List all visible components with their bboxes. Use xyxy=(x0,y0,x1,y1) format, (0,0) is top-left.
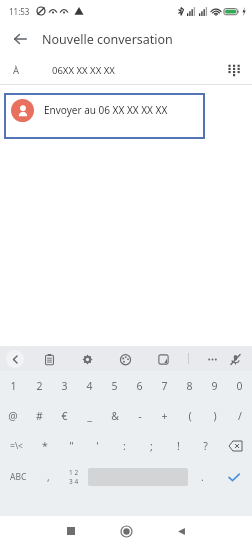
button[interactable]: 5 xyxy=(102,371,127,401)
button[interactable]: 9 xyxy=(202,371,227,401)
staticText: 8 xyxy=(186,379,193,393)
staticText: 0 xyxy=(236,379,243,393)
button[interactable]: 1 xyxy=(0,371,26,401)
button[interactable]: Backspace xyxy=(219,431,252,461)
button[interactable]: * xyxy=(32,431,58,461)
button[interactable]: Home xyxy=(113,518,139,544)
button[interactable]: ? xyxy=(192,431,219,461)
button[interactable]: ( xyxy=(177,401,202,431)
staticText: - xyxy=(138,409,142,423)
button[interactable]: 3 xyxy=(52,371,77,401)
staticText: 3 xyxy=(61,379,68,393)
staticText: 2 xyxy=(36,379,43,393)
staticText: " xyxy=(69,439,74,453)
button[interactable]: ) xyxy=(202,401,227,431)
button[interactable]: " xyxy=(58,431,84,461)
button[interactable]: ' xyxy=(84,431,111,461)
staticText: / xyxy=(238,409,242,423)
staticText: ' xyxy=(96,439,99,453)
button[interactable]: 6 xyxy=(127,371,152,401)
button[interactable]: + xyxy=(152,401,177,431)
button[interactable]: 0 xyxy=(227,371,252,401)
staticText: 1 2 xyxy=(69,468,79,477)
button[interactable]: : xyxy=(111,431,138,461)
button[interactable]: ABC xyxy=(0,461,36,493)
button[interactable]: Enter xyxy=(215,461,252,493)
button[interactable]: =\< xyxy=(0,431,32,461)
button[interactable]: Envoyer au 06 XX XX XX XX xyxy=(4,93,205,139)
staticText: € xyxy=(61,409,68,423)
button[interactable]: Back xyxy=(168,518,194,544)
button[interactable]: Expand toolbar xyxy=(6,350,24,368)
button[interactable]: Numbers xyxy=(61,461,86,493)
button[interactable]: 8 xyxy=(177,371,202,401)
staticText: Nouvelle conversation xyxy=(42,31,173,48)
staticText: 1 xyxy=(10,379,17,393)
staticText: Envoyer au 06 XX XX XX XX xyxy=(44,103,168,117)
staticText: + xyxy=(161,409,168,423)
staticText: # xyxy=(36,409,43,423)
button[interactable]: ; xyxy=(138,431,165,461)
button[interactable]: 7 xyxy=(152,371,177,401)
staticText: ) xyxy=(213,409,217,423)
staticText: 7 xyxy=(161,379,168,393)
staticText: ABC xyxy=(10,471,27,483)
staticText: 6 xyxy=(136,379,143,393)
button[interactable]: # xyxy=(26,401,52,431)
staticText: * xyxy=(42,439,48,453)
staticText: 11:53 xyxy=(9,6,30,17)
staticText: . xyxy=(201,470,204,484)
staticText: ; xyxy=(150,439,153,453)
staticText: ( xyxy=(188,409,192,423)
button[interactable]: . xyxy=(190,461,215,493)
button[interactable]: @ xyxy=(0,401,26,431)
button[interactable]: & xyxy=(102,401,127,431)
staticText: 06XX XX XX XX xyxy=(52,64,115,77)
staticText: _ xyxy=(87,409,92,423)
button[interactable]: 2 xyxy=(26,371,52,401)
button[interactable]: Voice input off xyxy=(226,350,244,368)
button[interactable]: 4 xyxy=(77,371,102,401)
button[interactable]: - xyxy=(127,401,152,431)
button[interactable]: Themes xyxy=(116,350,134,368)
button[interactable]: Recent apps xyxy=(58,518,84,544)
staticText: , xyxy=(47,470,50,484)
staticText: 3 4 xyxy=(69,477,79,486)
staticText: ? xyxy=(203,439,208,453)
button[interactable]: Dialpad xyxy=(220,57,246,83)
staticText: & xyxy=(111,409,119,423)
staticText: 5 xyxy=(111,379,118,393)
staticText: : xyxy=(123,439,126,453)
button[interactable]: / xyxy=(227,401,252,431)
button[interactable]: Clipboard xyxy=(40,350,58,368)
button[interactable]: Back xyxy=(6,25,34,53)
staticText: @ xyxy=(8,409,18,423)
button[interactable]: More options xyxy=(203,350,221,368)
staticText: À xyxy=(13,64,20,77)
staticText: =\< xyxy=(10,440,23,452)
button[interactable]: Stickers xyxy=(154,350,172,368)
button[interactable]: Settings xyxy=(78,350,96,368)
staticText: ! xyxy=(177,439,180,453)
button[interactable]: ! xyxy=(165,431,192,461)
button[interactable]: , xyxy=(36,461,61,493)
staticText: 4 xyxy=(86,379,93,393)
button[interactable]: € xyxy=(52,401,77,431)
button[interactable]: _ xyxy=(77,401,102,431)
staticText: 9 xyxy=(211,379,218,393)
